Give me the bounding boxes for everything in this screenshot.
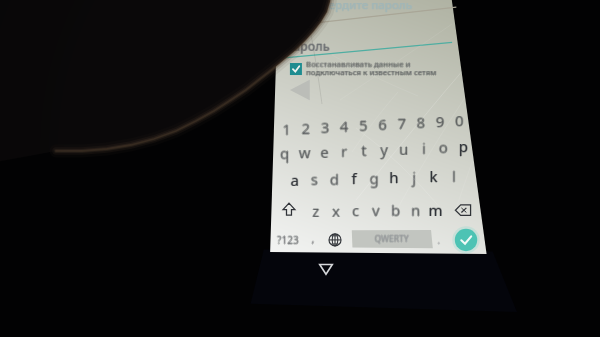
button[interactable]: Photo of a phone showing the Android pas… (0, 0, 600, 337)
